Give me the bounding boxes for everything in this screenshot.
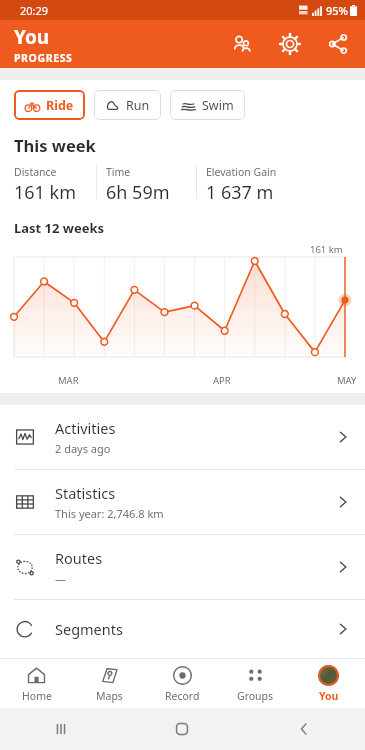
button[interactable]: You	[292, 659, 365, 708]
button[interactable]: Statistics	[0, 470, 365, 534]
button[interactable]: Swim	[170, 90, 245, 120]
staticText: Statistics	[55, 483, 116, 503]
staticText: 95%	[326, 3, 348, 18]
staticText: You	[319, 689, 339, 703]
staticText: Routes	[55, 548, 103, 568]
staticText: —	[55, 571, 66, 586]
other: Recents	[53, 721, 69, 737]
staticText: Time	[106, 165, 131, 179]
staticText: Distance	[14, 165, 57, 179]
staticText: 161 km	[14, 180, 77, 205]
staticText: 6h 59m	[106, 180, 170, 205]
staticText: Maps	[96, 689, 123, 703]
button[interactable]: Segments	[0, 600, 365, 658]
button[interactable]: Share	[321, 27, 355, 61]
staticText: You	[14, 24, 50, 50]
other: Home	[174, 721, 190, 737]
staticText: Ride	[46, 97, 74, 114]
staticText: Run	[126, 97, 150, 114]
button[interactable]: Settings	[273, 27, 307, 61]
staticText: Activities	[55, 418, 116, 438]
staticText: Elevation Gain	[206, 165, 277, 179]
button[interactable]: Groups	[219, 659, 292, 708]
staticText: Last 12 weeks	[14, 219, 105, 237]
button[interactable]: Home	[0, 659, 73, 708]
staticText: 20:29	[20, 3, 49, 18]
staticText: This week	[14, 134, 96, 156]
staticText: 2 days ago	[55, 441, 111, 456]
button[interactable]: Group challenges	[225, 27, 259, 61]
button[interactable]: Routes	[0, 535, 365, 599]
button[interactable]: Ride	[14, 90, 85, 120]
staticText: Swim	[202, 97, 234, 114]
button[interactable]: Run	[94, 90, 161, 120]
staticText: 1 637 m	[206, 180, 274, 205]
staticText: PROGRESS	[14, 51, 73, 65]
staticText: 161 km	[310, 243, 343, 256]
button[interactable]: Maps	[73, 659, 146, 708]
other: Back	[296, 721, 312, 737]
button[interactable]: Record	[146, 659, 219, 708]
staticText: Segments	[55, 619, 123, 639]
staticText: Home	[22, 689, 52, 703]
staticText: Record	[165, 689, 200, 703]
staticText: MAY	[337, 374, 357, 387]
button[interactable]: Activities	[0, 405, 365, 469]
staticText: This year: 2,746.8 km	[55, 506, 164, 521]
staticText: Groups	[237, 689, 274, 703]
staticText: APR	[213, 374, 231, 387]
staticText: MAR	[58, 374, 79, 387]
